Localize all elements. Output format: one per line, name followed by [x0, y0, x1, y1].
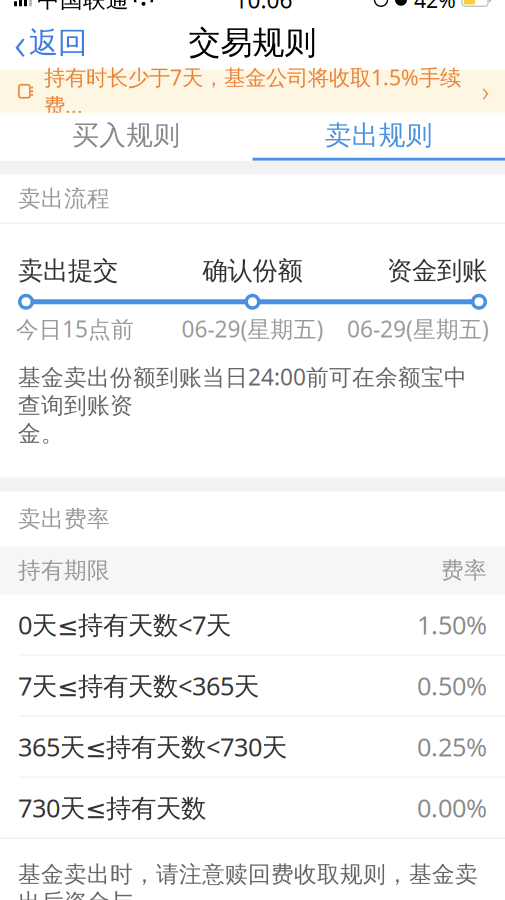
staticText: 今日15点前: [16, 314, 134, 344]
staticText: 卖出费率: [18, 505, 110, 533]
staticText: 0.25%: [417, 730, 487, 763]
button[interactable]: 持有时长少于7天，基金公司将收取1.5%手续费...: [0, 70, 505, 113]
staticText: 06-29(星期五): [347, 314, 489, 344]
staticText: 持有期限: [18, 557, 110, 584]
staticText: 06-29(星期五): [181, 314, 323, 344]
staticText: 返回: [29, 25, 87, 61]
staticText: 确认份额: [202, 255, 302, 286]
button[interactable]: 买入规则: [0, 113, 252, 158]
staticText: 基金卖出份额到账当日24:00前可在余额宝中查询到账资 金。: [18, 362, 467, 448]
staticText: 365天≤持有天数<730天: [18, 730, 287, 763]
staticText: 0.00%: [417, 791, 487, 824]
staticText: 买入规则: [72, 119, 180, 152]
staticText: 资金到账: [387, 255, 487, 286]
staticText: 730天≤持有天数: [18, 791, 206, 824]
staticText: ›: [482, 74, 489, 109]
button[interactable]: ‹: [0, 16, 101, 70]
staticText: 基金卖出时，请注意赎回费收取规则，基金卖出后资金与: [18, 861, 478, 900]
staticText: 42%: [414, 0, 456, 14]
staticText: 卖出规则: [325, 119, 433, 152]
staticText: 交易规则: [188, 23, 316, 62]
staticText: 费率: [441, 557, 487, 584]
staticText: 卖出流程: [18, 185, 110, 213]
staticText: 卖出提交: [18, 255, 118, 286]
button[interactable]: 卖出规则: [252, 113, 505, 158]
staticText: 7天≤持有天数<365天: [18, 669, 259, 702]
staticText: 10:06: [234, 0, 292, 15]
staticText: 持有时长少于7天，基金公司将收取1.5%手续费...: [44, 63, 461, 120]
staticText: 中国联通: [37, 0, 129, 14]
staticText: 1.50%: [417, 608, 487, 641]
staticText: 0.50%: [417, 669, 487, 702]
staticText: 0天≤持有天数<7天: [18, 608, 231, 641]
staticText: ‹: [14, 13, 26, 73]
